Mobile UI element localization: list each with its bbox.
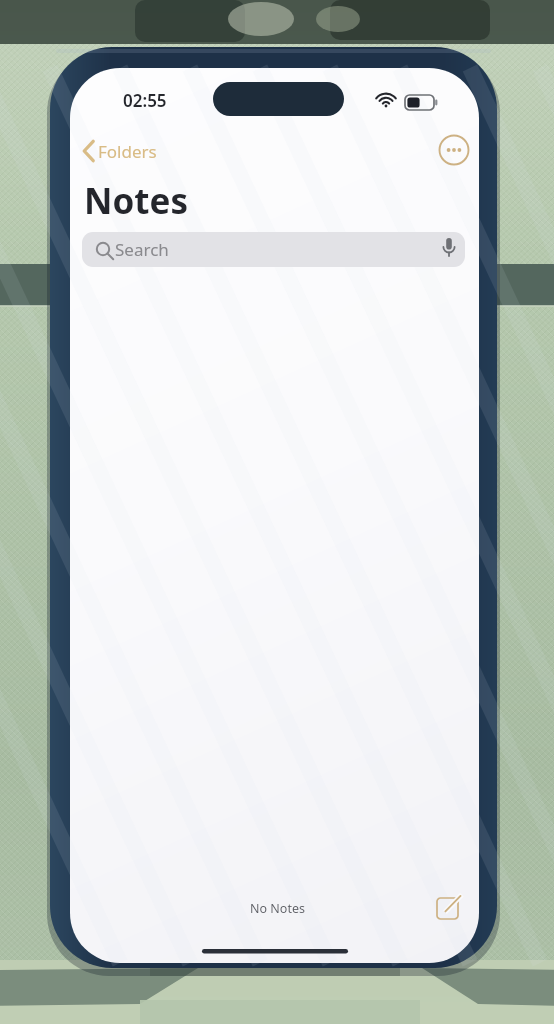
staticText: Notes <box>84 177 188 223</box>
button[interactable]: New note <box>430 890 468 928</box>
staticText: 02:55 <box>123 89 167 112</box>
staticText: Folders <box>98 140 157 163</box>
staticText: No Notes <box>250 900 305 917</box>
staticText: Search <box>115 238 169 261</box>
button[interactable]: More options <box>436 132 472 168</box>
button[interactable]: Search <box>82 232 465 267</box>
button[interactable]: Folders <box>78 136 174 166</box>
